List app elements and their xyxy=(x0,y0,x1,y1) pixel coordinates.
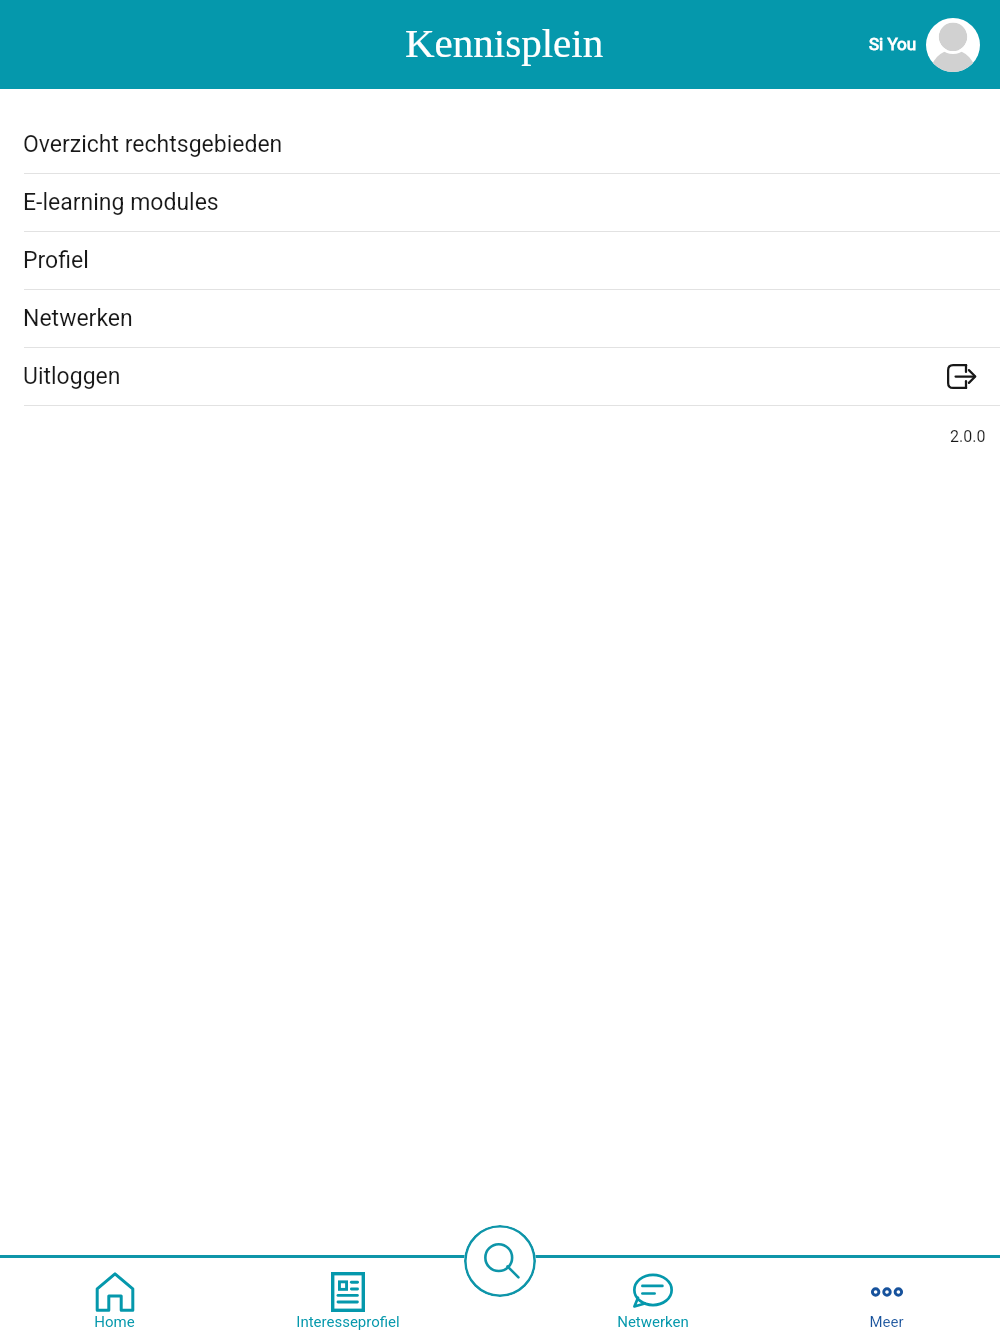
button[interactable]: Uitloggen xyxy=(947,364,976,389)
staticText: Profiel xyxy=(23,247,89,274)
button[interactable]: Overzicht rechtsgebieden xyxy=(0,116,1000,174)
staticText: Overzicht rechtsgebieden xyxy=(23,131,283,158)
staticText: 2.0.0 xyxy=(950,427,986,446)
button[interactable]: Netwerken xyxy=(533,1255,772,1334)
button[interactable]: Profiel xyxy=(0,232,1000,290)
button[interactable]: Zoeken xyxy=(464,1225,536,1297)
staticText: Netwerken xyxy=(617,1313,689,1331)
staticText: Home xyxy=(94,1313,135,1331)
button[interactable]: Netwerken xyxy=(0,290,1000,348)
staticText: Netwerken xyxy=(23,305,133,332)
button[interactable]: Meer xyxy=(772,1255,1000,1334)
staticText: Kennisplein xyxy=(405,20,604,65)
button[interactable]: Home xyxy=(0,1255,228,1334)
button[interactable]: Interesseprofiel xyxy=(228,1255,467,1334)
staticText: E-learning modules xyxy=(23,189,219,216)
staticText: Uitloggen xyxy=(23,363,121,390)
staticText: Si You xyxy=(869,34,917,54)
staticText: Interesseprofiel xyxy=(296,1313,400,1331)
button[interactable]: Profiel van Si You xyxy=(869,18,980,72)
button[interactable]: Uitloggen xyxy=(0,348,1000,406)
staticText: Meer xyxy=(869,1313,904,1331)
button[interactable]: E-learning modules xyxy=(0,174,1000,232)
